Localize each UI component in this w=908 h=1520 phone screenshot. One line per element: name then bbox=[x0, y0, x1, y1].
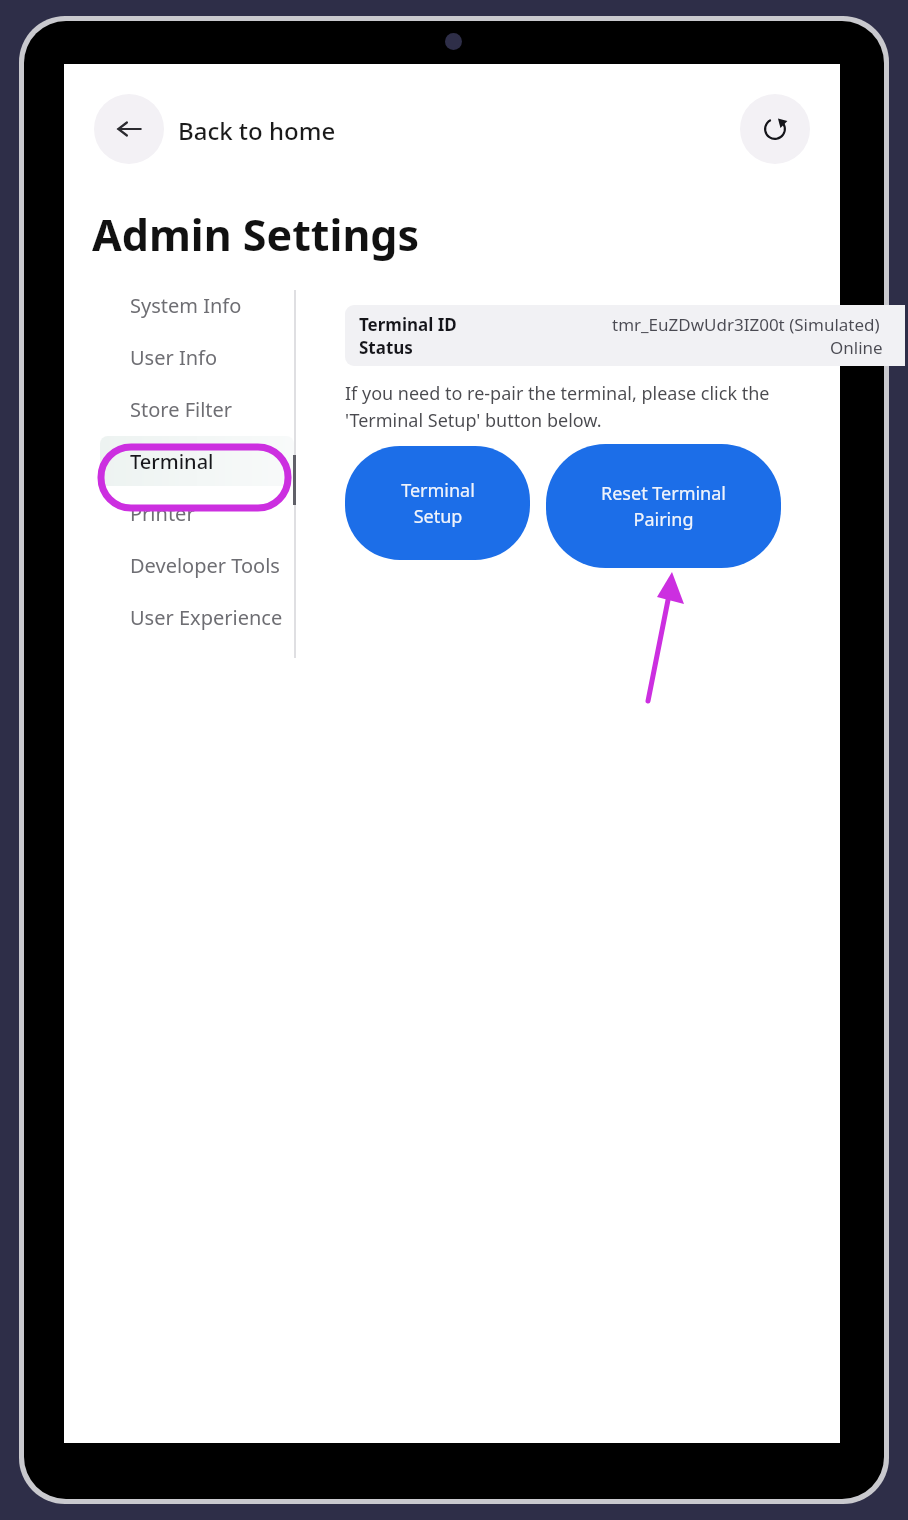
staticText: Terminal bbox=[130, 448, 214, 475]
staticText: User Info bbox=[130, 344, 218, 371]
button[interactable]: Terminal bbox=[100, 436, 294, 486]
button[interactable]: Store Filter bbox=[100, 384, 294, 434]
staticText: Online bbox=[830, 336, 883, 359]
button[interactable]: Developer Tools bbox=[100, 540, 294, 590]
button[interactable]: Printer bbox=[100, 488, 294, 538]
button[interactable]: Terminal Setup bbox=[345, 446, 530, 560]
button[interactable]: User Info bbox=[100, 332, 294, 382]
staticText: If you need to re-pair the terminal, ple… bbox=[345, 381, 770, 432]
staticText: User Experience bbox=[130, 604, 283, 631]
staticText: Developer Tools bbox=[130, 552, 280, 579]
button[interactable]: System Info bbox=[100, 280, 294, 330]
staticText: Terminal Setup bbox=[401, 478, 475, 529]
staticText: Reset Terminal Pairing bbox=[601, 481, 726, 532]
staticText: Terminal ID bbox=[359, 313, 457, 336]
staticText: Admin Settings bbox=[92, 205, 420, 264]
staticText: System Info bbox=[130, 292, 242, 319]
button[interactable]: Refresh bbox=[740, 94, 810, 164]
staticText: Status bbox=[359, 336, 413, 359]
staticText: tmr_EuZDwUdr3IZ00t (Simulated) bbox=[612, 313, 880, 336]
staticText: Printer bbox=[130, 500, 195, 527]
button[interactable]: User Experience bbox=[100, 592, 294, 642]
button[interactable]: Back bbox=[94, 94, 164, 164]
staticText: Store Filter bbox=[130, 396, 233, 423]
staticText: Back to home bbox=[178, 114, 336, 147]
button[interactable]: Reset Terminal Pairing bbox=[546, 444, 781, 568]
